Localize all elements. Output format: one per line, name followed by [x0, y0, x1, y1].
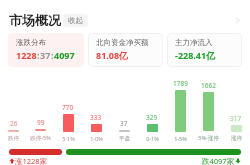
staticText: 平盘 — [119, 135, 130, 142]
button[interactable]: 收起 — [63, 14, 88, 27]
staticText: 81.08亿 — [96, 49, 129, 61]
staticText: 1-0% — [90, 135, 103, 142]
button[interactable]: More — [231, 14, 243, 26]
button[interactable]: 主力净流入 — [167, 33, 242, 67]
staticText: -228.41亿 — [175, 49, 216, 61]
staticText: 37 — [40, 49, 51, 61]
staticText: 主力净流入 — [175, 38, 213, 47]
staticText: 跌4097家 — [202, 156, 235, 165]
staticText: 收起 — [68, 16, 83, 25]
staticText: : — [51, 49, 54, 61]
staticText: 1228 — [16, 49, 37, 61]
staticText: 跌停 — [8, 135, 19, 142]
staticText: 333 — [90, 113, 102, 122]
staticText: 涨1228家 — [15, 156, 48, 165]
staticText: 37 — [120, 119, 128, 128]
staticText: 1-5% — [174, 135, 187, 142]
staticText: 北向资金净买额 — [96, 38, 149, 47]
button[interactable]: 涨跌分布 — [8, 33, 84, 67]
staticText: 5%-涨停 — [198, 134, 219, 142]
staticText: 市场概况 — [9, 12, 61, 28]
staticText: 跌停-5% — [30, 134, 51, 142]
staticText: 99 — [37, 118, 45, 127]
staticText: 1789 — [173, 79, 188, 88]
staticText: 0-1% — [146, 135, 159, 142]
button[interactable]: 北向资金净买额 — [88, 33, 163, 67]
staticText: 4097 — [54, 49, 75, 61]
staticText: 317 — [230, 114, 242, 123]
staticText: 1662 — [201, 81, 216, 90]
staticText: 涨跌分布 — [16, 38, 46, 47]
staticText: 5-1% — [62, 135, 75, 142]
staticText: 26 — [10, 119, 18, 128]
staticText: 770 — [62, 103, 74, 112]
staticText: 329 — [146, 113, 158, 122]
staticText: 涨停 — [231, 135, 242, 142]
staticText: : — [37, 49, 40, 61]
